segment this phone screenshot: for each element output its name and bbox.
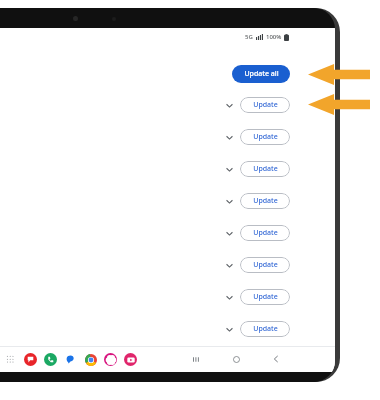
button[interactable]: Expand details bbox=[222, 162, 236, 176]
button[interactable]: App bbox=[44, 353, 57, 366]
button[interactable]: Expand details bbox=[222, 98, 236, 112]
button[interactable]: Recent apps bbox=[189, 352, 203, 366]
button[interactable]: Update bbox=[240, 129, 290, 145]
button[interactable]: Expand details bbox=[222, 354, 236, 368]
button[interactable]: Home bbox=[229, 352, 243, 366]
button[interactable]: Expand details bbox=[222, 194, 236, 208]
button[interactable]: Update bbox=[240, 193, 290, 209]
button[interactable]: App bbox=[124, 353, 137, 366]
staticText: 5G bbox=[245, 33, 253, 41]
button[interactable]: Update bbox=[240, 353, 290, 369]
staticText: Update bbox=[253, 164, 278, 174]
button[interactable]: Expand details bbox=[222, 130, 236, 144]
button[interactable]: Update bbox=[240, 289, 290, 305]
staticText: Update bbox=[253, 356, 278, 366]
button[interactable]: All apps bbox=[6, 355, 15, 364]
staticText: 100% bbox=[266, 33, 282, 41]
staticText: Update bbox=[253, 292, 278, 302]
button[interactable]: Expand details bbox=[222, 322, 236, 336]
button[interactable]: Expand details bbox=[222, 226, 236, 240]
button[interactable]: Update all bbox=[232, 65, 290, 83]
button[interactable]: App bbox=[24, 353, 37, 366]
button[interactable]: Update bbox=[240, 321, 290, 337]
staticText: Update bbox=[253, 260, 278, 270]
button[interactable]: Chrome bbox=[84, 353, 97, 366]
staticText: Update bbox=[253, 324, 278, 334]
staticText: Update bbox=[253, 228, 278, 238]
button[interactable]: Update bbox=[240, 257, 290, 273]
button[interactable]: Update bbox=[240, 225, 290, 241]
button[interactable]: Update bbox=[240, 97, 290, 113]
button[interactable]: Expand details bbox=[222, 258, 236, 272]
button[interactable]: Back bbox=[269, 352, 283, 366]
staticText: Update all bbox=[244, 69, 279, 79]
button[interactable]: Expand details bbox=[222, 290, 236, 304]
button[interactable]: App bbox=[104, 353, 117, 366]
button[interactable]: Messages bbox=[64, 353, 77, 366]
staticText: Update bbox=[253, 132, 278, 142]
staticText: Update bbox=[253, 100, 278, 110]
button[interactable]: Update bbox=[240, 161, 290, 177]
staticText: Update bbox=[253, 196, 278, 206]
